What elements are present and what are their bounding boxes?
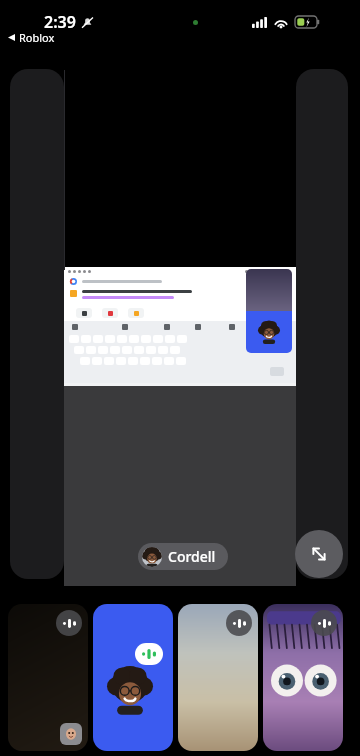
button[interactable] <box>296 69 348 579</box>
button[interactable] <box>64 267 296 386</box>
button[interactable]: Roblox <box>8 30 55 45</box>
other: Microphone level <box>311 610 337 636</box>
staticText: 2:39 <box>44 11 76 33</box>
button[interactable]: Microphone level <box>178 604 258 751</box>
other: Microphone level <box>226 610 252 636</box>
staticText: Cordell <box>168 547 216 566</box>
button[interactable] <box>64 56 296 586</box>
button[interactable]: Microphone level <box>8 604 88 751</box>
other: Microphone level <box>56 610 82 636</box>
staticText: Roblox <box>19 30 55 45</box>
button[interactable] <box>93 604 173 751</box>
button[interactable]: Cordell <box>138 543 228 570</box>
button[interactable]: Expand to full screen <box>295 530 343 578</box>
button[interactable]: Microphone level <box>263 604 343 751</box>
